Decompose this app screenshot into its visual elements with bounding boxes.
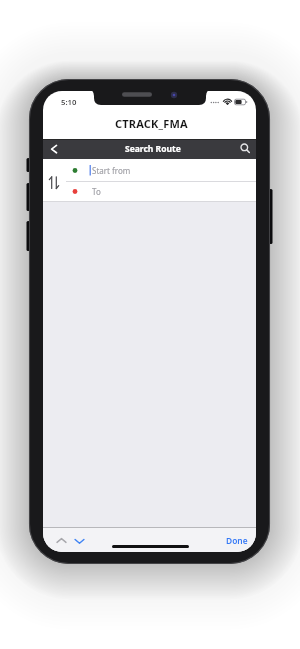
button[interactable]: To: [66, 182, 256, 201]
button[interactable]: [43, 159, 66, 201]
button[interactable]: [234, 139, 256, 159]
button[interactable]: [53, 531, 70, 548]
button[interactable]: [71, 532, 88, 549]
button[interactable]: Start from: [66, 159, 256, 181]
button[interactable]: [43, 139, 65, 159]
staticText: Start from: [92, 165, 131, 176]
staticText: Search Route: [125, 143, 181, 155]
button[interactable]: Done: [220, 527, 256, 552]
staticText: CTRACK_FMA: [115, 116, 188, 131]
staticText: Done: [226, 535, 248, 546]
staticText: To: [92, 186, 101, 197]
staticText: 5:10: [61, 97, 77, 108]
